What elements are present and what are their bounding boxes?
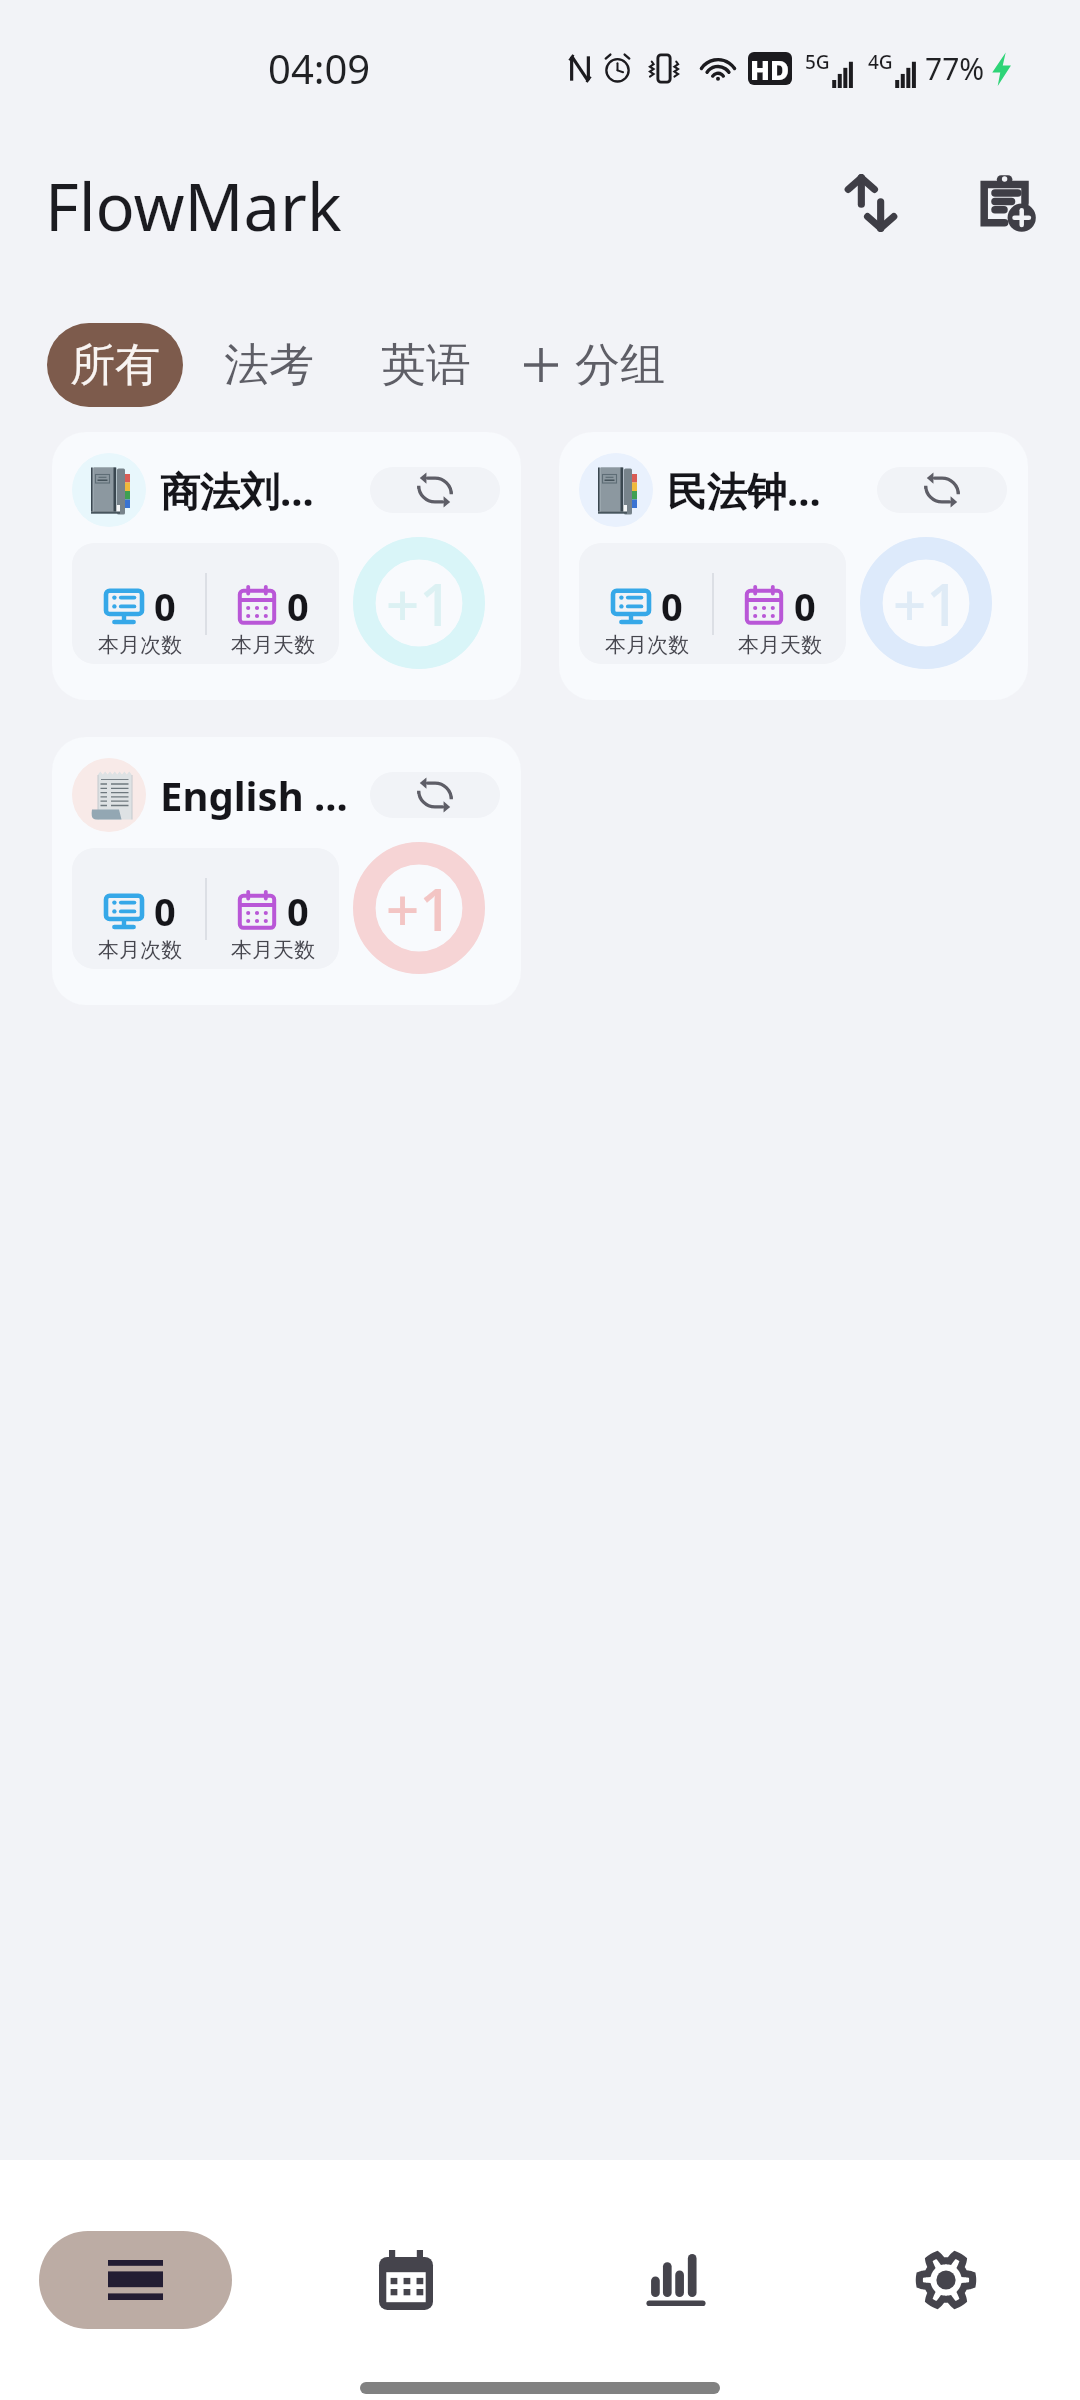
button[interactable]: Add one	[353, 537, 485, 669]
button[interactable]: Add task	[933, 141, 1080, 265]
button[interactable]: 英语	[359, 323, 493, 407]
button[interactable]: Repeat	[370, 467, 500, 513]
staticText: 4G	[868, 49, 893, 75]
button[interactable]: Calendar	[309, 2231, 502, 2329]
staticText: 0	[287, 580, 309, 632]
staticText: HD	[750, 52, 790, 85]
staticText: +1	[386, 564, 453, 643]
staticText: 5G	[805, 49, 830, 75]
button[interactable]: Habits	[39, 2231, 232, 2329]
button[interactable]: Sort	[809, 141, 933, 265]
staticText: 本月天数	[231, 632, 315, 658]
button[interactable]: English ...	[52, 737, 521, 1005]
button[interactable]: 民法钟...	[559, 432, 1028, 700]
staticText: 本月天数	[231, 937, 315, 963]
staticText: FlowMark	[45, 162, 342, 251]
staticText: English ...	[160, 768, 348, 822]
staticText: 77%	[925, 48, 985, 89]
button[interactable]: Settings	[849, 2231, 1042, 2329]
staticText: 本月次数	[605, 632, 689, 658]
staticText: 分组	[575, 337, 665, 394]
staticText: 0	[287, 885, 309, 937]
button[interactable]: Add one	[860, 537, 992, 669]
staticText: 本月次数	[98, 632, 182, 658]
button[interactable]: Statistics	[579, 2231, 772, 2329]
staticText: 0	[154, 885, 176, 937]
staticText: 英语	[381, 337, 471, 394]
button[interactable]: 所有	[47, 323, 183, 407]
staticText: 0	[661, 580, 683, 632]
button[interactable]: 法考	[202, 323, 336, 407]
staticText: 商法刘...	[160, 463, 314, 518]
button[interactable]: 商法刘...	[52, 432, 521, 700]
staticText: 0	[794, 580, 816, 632]
button[interactable]: Repeat	[877, 467, 1007, 513]
staticText: 法考	[224, 337, 314, 394]
staticText: 民法钟...	[667, 463, 821, 518]
button[interactable]: 分组	[502, 323, 687, 407]
button[interactable]: Add one	[353, 842, 485, 974]
staticText: 所有	[70, 337, 160, 394]
staticText: 0	[154, 580, 176, 632]
staticText: 04:09	[268, 41, 371, 95]
staticText: +1	[893, 564, 960, 643]
staticText: +1	[386, 869, 453, 948]
staticText: 本月天数	[738, 632, 822, 658]
staticText: 本月次数	[98, 937, 182, 963]
button[interactable]: Repeat	[370, 772, 500, 818]
